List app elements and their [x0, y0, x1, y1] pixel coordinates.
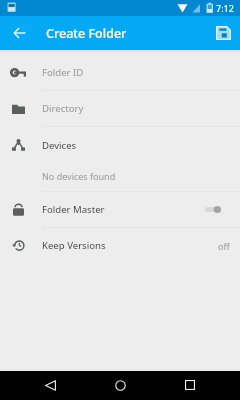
button[interactable]: Recents — [176, 371, 204, 399]
button[interactable]: Folder Master — [0, 192, 240, 227]
staticText: No devices found — [42, 170, 116, 182]
button[interactable]: Save — [206, 16, 240, 50]
staticText: Keep Versions — [42, 239, 106, 252]
button[interactable]: Folder ID — [0, 55, 240, 90]
staticText: Devices — [42, 139, 77, 152]
staticText: off — [218, 240, 230, 252]
button[interactable]: Back — [36, 371, 64, 399]
staticText: Folder Master — [42, 203, 105, 216]
staticText: Create Folder — [46, 25, 127, 42]
button[interactable]: Back — [0, 16, 38, 50]
button[interactable]: Keep Versions — [0, 228, 240, 263]
button[interactable]: Directory — [0, 91, 240, 126]
button[interactable]: Home — [106, 371, 134, 399]
staticText: 7:12 — [216, 2, 234, 14]
staticText: Folder ID — [42, 66, 84, 79]
button[interactable]: Devices — [0, 127, 240, 163]
staticText: Directory — [42, 102, 84, 115]
